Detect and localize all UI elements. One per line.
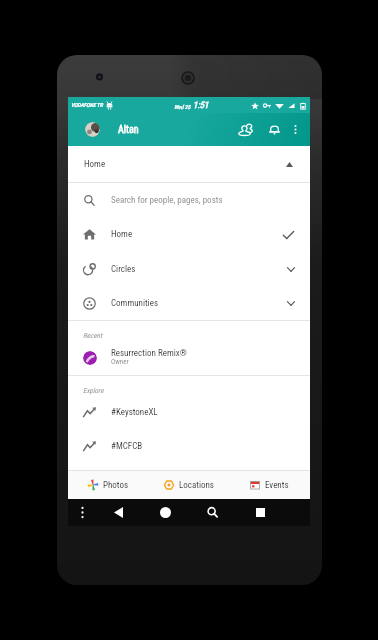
button[interactable]: Profile photo [85, 122, 100, 137]
button[interactable]: Locations [148, 471, 229, 499]
staticText: Photos [103, 480, 129, 491]
button[interactable]: Circles [234, 113, 256, 146]
button[interactable]: Back [102, 499, 134, 526]
button[interactable]: Photos [68, 471, 148, 499]
button[interactable]: Menu [66, 499, 98, 526]
staticText: Wed 25 [174, 104, 191, 110]
staticText: Events [265, 480, 289, 491]
button[interactable]: Resurrection Remix® [68, 340, 310, 375]
staticText: Explore [83, 387, 104, 395]
button[interactable]: Communities [68, 286, 310, 320]
button[interactable]: More options [284, 113, 306, 146]
staticText: #MCFCB [111, 441, 143, 452]
staticText: Owner [111, 358, 129, 366]
staticText: Locations [179, 480, 214, 491]
button[interactable]: Home [68, 146, 310, 182]
staticText: Altan [118, 124, 139, 136]
button[interactable]: Search [196, 499, 228, 526]
button[interactable]: Notifications [263, 113, 285, 146]
staticText: VODAFONE TR [71, 102, 103, 108]
staticText: Recent [83, 332, 102, 340]
staticText: Home [111, 229, 133, 240]
staticText: Search for people, pages, posts [111, 195, 223, 206]
button[interactable]: Circles [68, 252, 310, 286]
button[interactable]: Home [149, 499, 181, 526]
button[interactable]: Search for people, pages, posts [68, 183, 310, 217]
button[interactable]: Events [229, 471, 310, 499]
staticText: #KeystoneXL [111, 407, 158, 418]
staticText: Home [84, 159, 106, 170]
staticText: Resurrection Remix® [111, 348, 187, 359]
button[interactable]: #MCFCB [68, 429, 310, 463]
staticText: Circles [111, 264, 136, 275]
button[interactable]: Home [68, 217, 310, 252]
button[interactable]: #KeystoneXL [68, 395, 310, 429]
staticText: 1:51 [193, 100, 209, 111]
staticText: Communities [111, 298, 158, 309]
button[interactable]: Recent apps [244, 499, 276, 526]
